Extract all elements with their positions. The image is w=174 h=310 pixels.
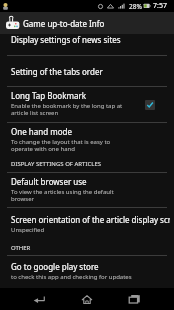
staticText: One hand mode xyxy=(11,126,72,137)
staticText: Default browser use xyxy=(11,176,87,187)
button[interactable]: One hand mode xyxy=(0,123,174,157)
staticText: Display settings of news sites xyxy=(11,34,121,45)
staticText: to check this app and checking for updat… xyxy=(11,273,132,281)
staticText: Setting of the tabs order xyxy=(11,66,103,77)
staticText: 7:57 xyxy=(153,1,167,11)
staticText: 28% xyxy=(129,2,142,11)
staticText: Screen orientation of the article displa… xyxy=(11,214,170,225)
staticText: Game up-to-date Info xyxy=(23,18,105,29)
button[interactable]: Screen orientation of the article displa… xyxy=(0,208,174,241)
button[interactable]: Default browser use xyxy=(0,173,174,207)
staticText: OTHER xyxy=(11,244,31,252)
staticText: Enable the bookmark by the long tap at a… xyxy=(11,102,123,117)
staticText: Unspecified xyxy=(11,226,45,234)
button[interactable]: Game up-to-date Info xyxy=(0,12,174,34)
staticText: Go to google play store xyxy=(11,261,99,272)
staticText: Long Tap Bookmark xyxy=(11,90,86,101)
staticText: To view the articles using the default b… xyxy=(11,188,114,203)
button[interactable]: OTHER xyxy=(0,241,174,255)
staticText: DISPLAY SETTINGS OF ARTICLES xyxy=(11,160,102,168)
button[interactable]: Recent apps xyxy=(118,288,151,310)
staticText: To change the layout that is easy to ope… xyxy=(11,138,111,153)
button[interactable]: Back xyxy=(22,288,55,310)
button[interactable]: Long Tap Bookmark xyxy=(0,87,174,122)
button[interactable]: Long Tap Bookmark toggle xyxy=(145,100,155,110)
button[interactable]: Display settings of news sites xyxy=(0,23,174,55)
button[interactable]: Setting of the tabs order xyxy=(0,56,174,86)
button[interactable]: Go to google play store xyxy=(0,256,174,288)
button[interactable]: DISPLAY SETTINGS OF ARTICLES xyxy=(0,157,174,172)
button[interactable]: Home xyxy=(70,288,103,310)
